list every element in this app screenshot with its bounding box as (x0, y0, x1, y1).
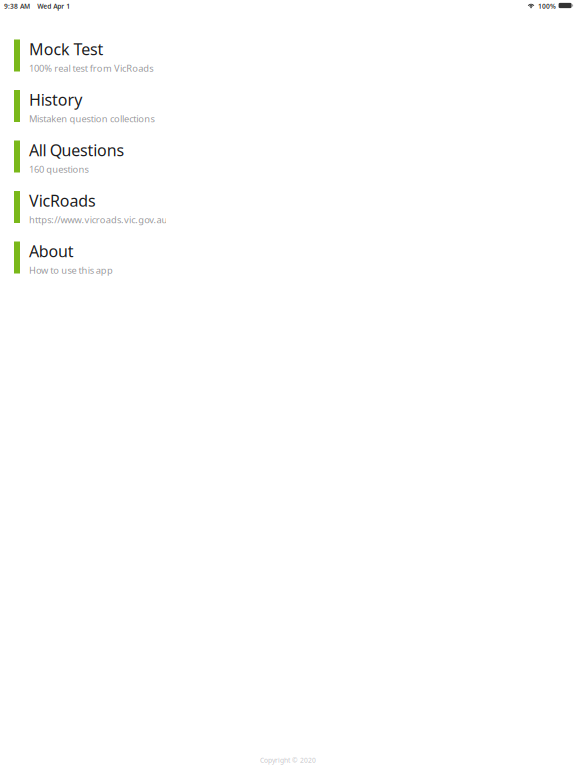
staticText: All Questions (29, 139, 124, 161)
staticText: Mock Test (29, 38, 104, 60)
staticText: Copyright © 2020 (260, 756, 316, 764)
button[interactable]: About (0, 241, 576, 292)
staticText: 100% (538, 2, 556, 11)
staticText: History (29, 89, 82, 110)
staticText: 100% real test from VicRoads (29, 62, 153, 74)
staticText: Mistaken question collections (29, 112, 154, 125)
staticText: About (29, 240, 74, 262)
staticText: Wed Apr 1 (37, 2, 70, 11)
button[interactable]: History (0, 90, 576, 140)
button[interactable]: VicRoads (0, 191, 576, 241)
staticText: 9:38 AM (4, 2, 30, 11)
staticText: 160 questions (29, 163, 89, 175)
staticText: https://www.vicroads.vic.gov.au (29, 213, 167, 226)
button[interactable]: Mock Test (0, 39, 576, 90)
staticText: VicRoads (29, 190, 96, 211)
staticText: How to use this app (29, 264, 113, 276)
button[interactable]: All Questions (0, 140, 576, 191)
